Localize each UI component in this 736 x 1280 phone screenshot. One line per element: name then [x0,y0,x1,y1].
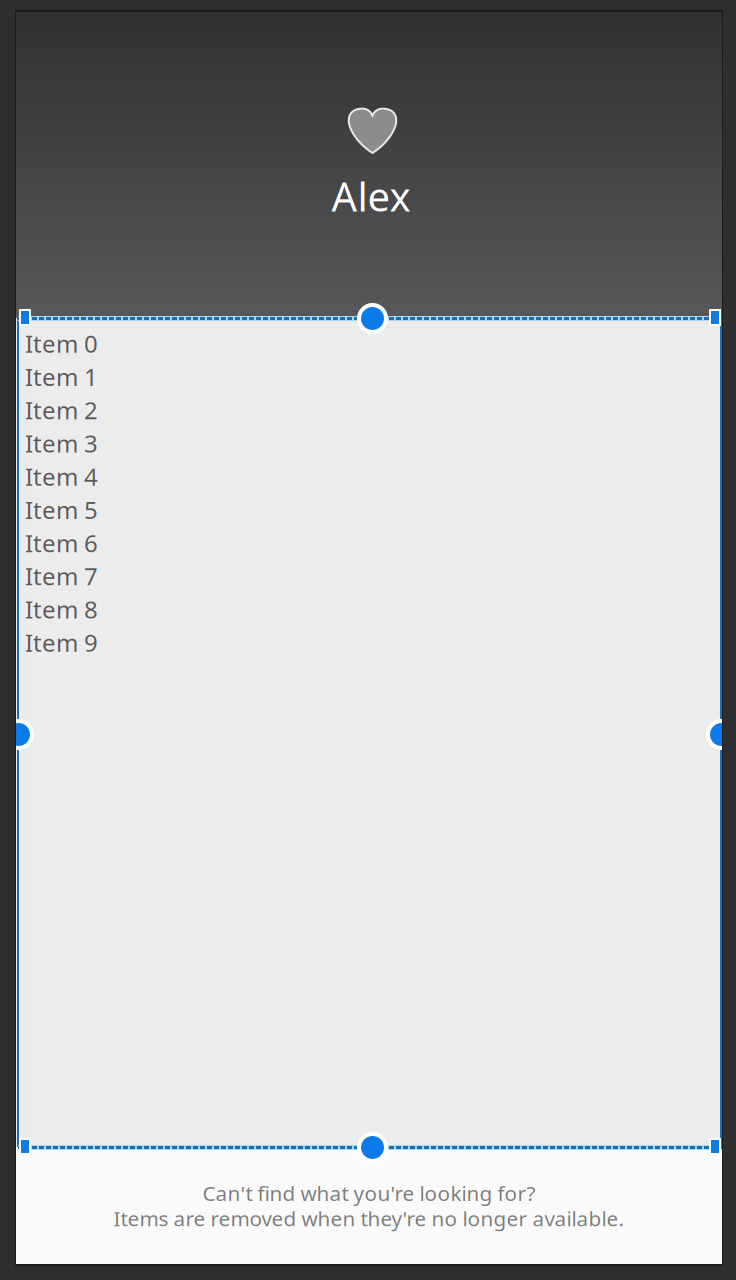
staticText: Item 0 [25,328,98,359]
button[interactable]: Resize top edge [357,303,388,334]
staticText: Alex [331,169,410,222]
staticText: Item 1 [25,361,98,393]
staticText: Item 4 [25,460,98,492]
button[interactable]: Resize right edge [706,719,736,750]
button[interactable]: Item 9 [25,626,713,659]
button[interactable]: Item 5 [25,493,713,526]
button[interactable]: Resize bottom left corner [19,1138,31,1155]
staticText: Item 3 [25,427,98,459]
button[interactable]: Item 8 [25,593,713,626]
button[interactable]: Item 3 [25,427,713,460]
button[interactable]: Item 7 [25,559,713,592]
button[interactable]: Resize left edge [3,719,34,750]
button[interactable]: Item 2 [25,393,713,426]
button[interactable]: Item 4 [25,460,713,493]
button[interactable]: Favourites [348,107,397,153]
staticText: Item 2 [25,394,98,426]
button[interactable]: Item 0 [25,327,713,360]
button[interactable]: Resize bottom edge [357,1132,388,1163]
button[interactable]: Resize top left corner [19,309,31,326]
staticText: Item 9 [25,626,98,658]
staticText: Items are removed when they're no longer… [113,1204,624,1232]
button[interactable]: Alex [18,176,724,216]
button[interactable]: Resize bottom right corner [709,1138,721,1155]
staticText: Item 6 [25,527,98,559]
button[interactable]: Item 6 [25,526,713,559]
button[interactable]: Item 1 [25,360,713,393]
staticText: Can't find what you're looking for? [202,1179,535,1207]
staticText: Item 5 [25,494,98,526]
button[interactable]: Resize top right corner [709,309,721,326]
staticText: Item 7 [25,560,98,592]
staticText: Item 8 [25,593,98,625]
